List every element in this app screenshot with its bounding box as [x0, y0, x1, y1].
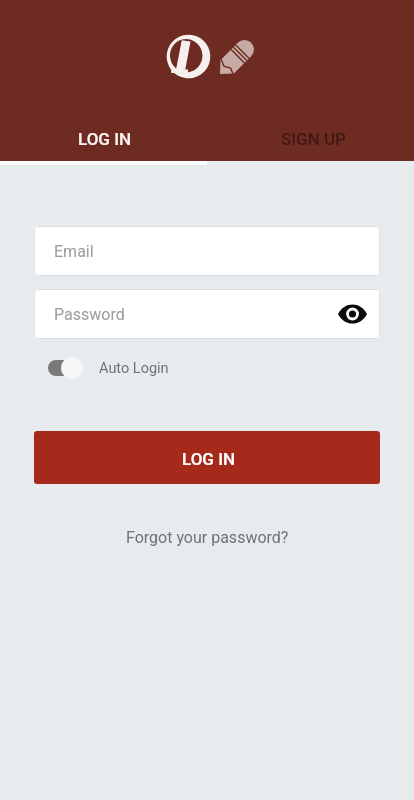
button[interactable]: Password	[34, 289, 380, 339]
staticText: LOG IN	[182, 449, 236, 469]
button[interactable]: Forgot your password?	[114, 522, 301, 553]
button[interactable]: Email	[34, 226, 380, 276]
staticText: Email	[54, 242, 94, 261]
button[interactable]: SIGN UP	[207, 113, 414, 161]
button[interactable]: LOG IN	[34, 431, 380, 484]
staticText: LOG IN	[78, 129, 132, 149]
staticText: Forgot your password?	[126, 528, 289, 547]
button[interactable]: LOG IN	[0, 113, 207, 161]
staticText: Auto Login	[99, 360, 169, 377]
button[interactable]: Show password	[333, 295, 371, 333]
staticText: SIGN UP	[281, 129, 346, 149]
staticText: Password	[54, 305, 125, 324]
button[interactable]: Auto Login	[48, 356, 177, 380]
